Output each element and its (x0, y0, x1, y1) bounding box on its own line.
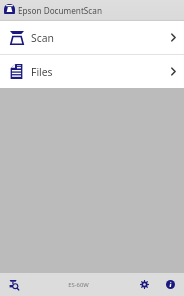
staticText: Files (31, 65, 53, 79)
staticText: ES-60W (68, 281, 89, 289)
button[interactable]: Settings (132, 273, 156, 296)
button[interactable]: Scan (0, 21, 184, 54)
button[interactable]: Select scanner (0, 273, 27, 296)
staticText: Epson DocumentScan (18, 5, 102, 16)
button[interactable]: Files (0, 55, 184, 88)
button[interactable]: Information (158, 273, 182, 296)
staticText: Scan (31, 31, 54, 45)
